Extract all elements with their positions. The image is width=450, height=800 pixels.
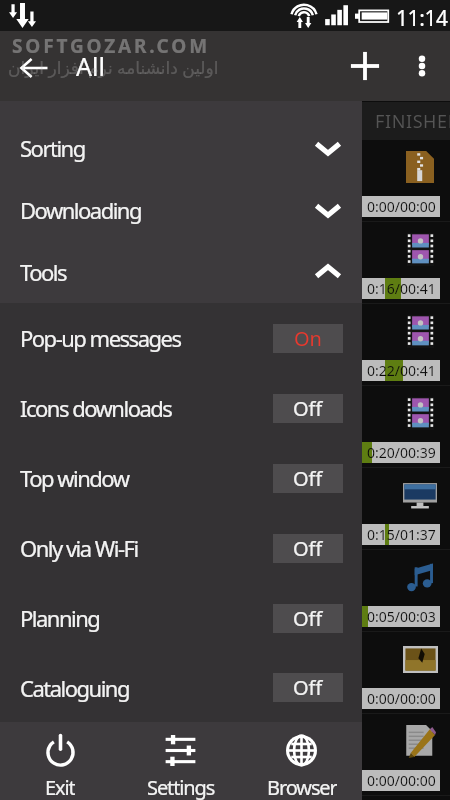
- staticText: Downloading: [20, 195, 141, 225]
- button[interactable]: Planning: [0, 583, 362, 653]
- staticText: 0:00/00:00: [367, 689, 436, 708]
- button[interactable]: 0:00/00:00: [346, 632, 450, 714]
- button[interactable]: Off: [273, 534, 343, 563]
- staticText: 0:22/00:41: [367, 361, 436, 380]
- staticText: All: [76, 49, 105, 83]
- button[interactable]: Sorting: [0, 117, 362, 179]
- staticText: Pop-up messages: [20, 323, 181, 353]
- button[interactable]: Top window: [0, 443, 362, 513]
- button[interactable]: Only via Wi-Fi: [0, 513, 362, 583]
- staticText: 0:00/00:00: [367, 771, 436, 790]
- staticText: SOFTGOZAR.COM: [12, 33, 210, 59]
- staticText: Icons downloads: [20, 393, 172, 423]
- staticText: 0:15/01:37: [367, 525, 436, 544]
- staticText: Exit: [45, 774, 75, 800]
- staticText: Tools: [20, 257, 67, 287]
- staticText: 0:16/00:41: [367, 279, 436, 298]
- staticText: Settings: [147, 774, 215, 800]
- staticText: Off: [293, 535, 323, 562]
- button[interactable]: Off: [273, 604, 343, 633]
- button[interactable]: 0:15/01:37: [346, 468, 450, 550]
- button[interactable]: Cataloguing: [0, 653, 362, 722]
- button[interactable]: Off: [273, 673, 343, 702]
- button[interactable]: More options: [394, 38, 450, 94]
- button[interactable]: 0:00/00:00: [346, 714, 450, 796]
- button[interactable]: Off: [273, 464, 343, 493]
- staticText: Off: [293, 395, 323, 422]
- staticText: On: [294, 325, 322, 352]
- staticText: Only via Wi-Fi: [20, 533, 138, 563]
- button[interactable]: Pop-up messages: [0, 303, 362, 373]
- button[interactable]: Add download: [336, 37, 394, 95]
- staticText: Planning: [20, 603, 100, 633]
- staticText: Browser: [267, 774, 337, 800]
- staticText: 11:14: [396, 4, 448, 33]
- staticText: Off: [293, 465, 323, 492]
- staticText: Off: [293, 605, 323, 632]
- button[interactable]: Tools: [0, 241, 362, 303]
- button[interactable]: 0:22/00:41: [346, 304, 450, 386]
- button[interactable]: Browser: [241, 722, 362, 800]
- button[interactable]: Off: [273, 394, 343, 423]
- button[interactable]: On: [273, 324, 343, 353]
- button[interactable]: Downloading: [0, 179, 362, 241]
- staticText: Top window: [20, 463, 129, 493]
- staticText: Sorting: [20, 133, 85, 163]
- button[interactable]: Settings: [120, 722, 241, 800]
- staticText: Off: [293, 674, 323, 701]
- staticText: اولین دانشنامه نرم افزار ایران: [8, 56, 219, 79]
- button[interactable]: Icons downloads: [0, 373, 362, 443]
- staticText: Cataloguing: [20, 673, 129, 703]
- button[interactable]: 0:16/00:41: [346, 222, 450, 304]
- staticText: 0:00/00:00: [367, 197, 436, 216]
- button[interactable]: Back: [5, 39, 63, 97]
- staticText: 0:05/00:03: [367, 607, 436, 626]
- button[interactable]: Exit: [0, 722, 120, 800]
- staticText: FINISHED: [375, 109, 450, 134]
- button[interactable]: 0:00/00:00: [346, 140, 450, 222]
- staticText: 0:20/00:39: [367, 443, 436, 462]
- button[interactable]: 0:05/00:03: [346, 550, 450, 632]
- button[interactable]: 0:20/00:39: [346, 386, 450, 468]
